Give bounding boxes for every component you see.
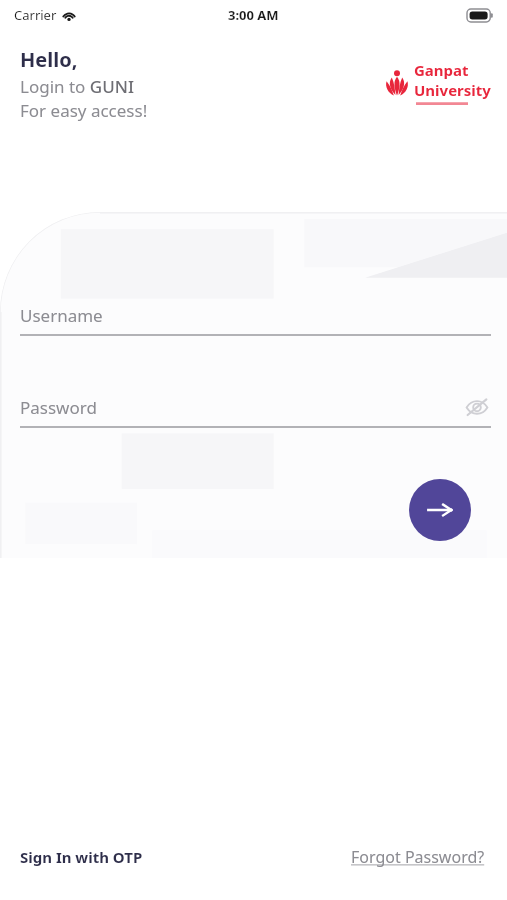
staticText: University [414, 80, 491, 100]
staticText: Forgot Password? [351, 846, 485, 868]
staticText: Login to GUNI [20, 75, 134, 98]
staticText: For easy access! [20, 99, 148, 122]
button[interactable]: Sign In with OTP [20, 843, 143, 871]
staticText: 3:00 AM [228, 6, 279, 24]
staticText: Password [20, 396, 97, 419]
button[interactable]: Show password [461, 391, 493, 423]
button[interactable]: Sign in [409, 479, 471, 541]
button[interactable]: Forgot Password? [351, 842, 485, 872]
staticText: Username [20, 304, 103, 327]
button[interactable]: Password [0, 382, 507, 428]
staticText: Sign In with OTP [20, 847, 143, 867]
staticText: Ganpat [414, 60, 469, 80]
staticText: Carrier [14, 6, 57, 24]
staticText: Hello, [20, 46, 78, 73]
button[interactable]: Username [0, 290, 507, 336]
